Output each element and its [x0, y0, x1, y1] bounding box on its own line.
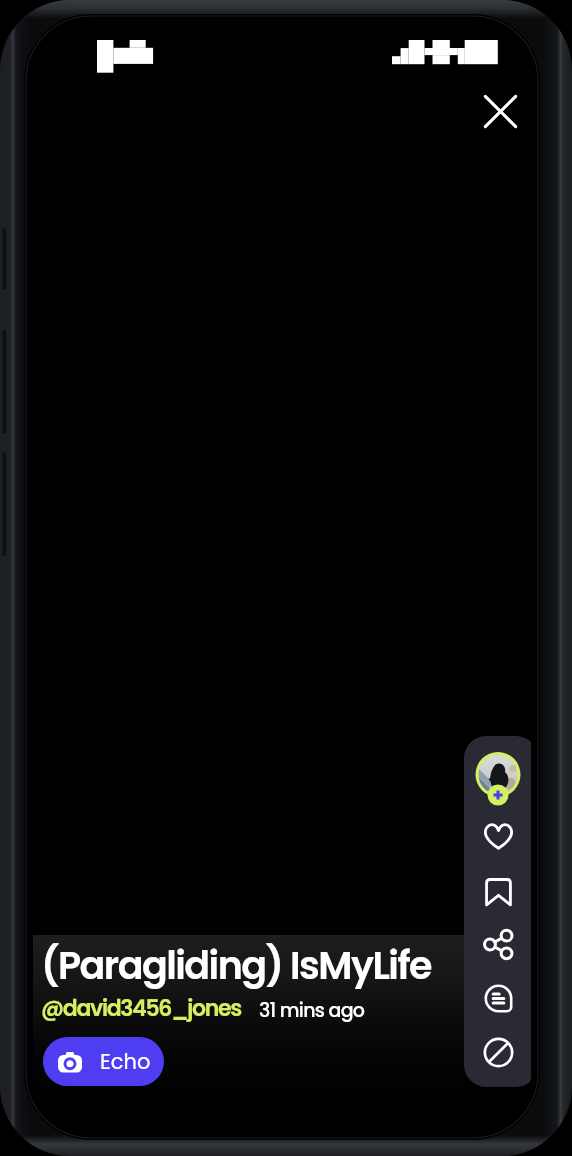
button[interactable]: Save [471, 863, 525, 917]
staticText: @david3456_jones [41, 993, 241, 1024]
button[interactable]: Like [471, 809, 525, 863]
button[interactable]: Share [471, 917, 525, 971]
staticText: (Paragliding) IsMyLife [41, 939, 431, 992]
staticText: Echo [100, 1047, 151, 1076]
button[interactable]: Comments [471, 971, 525, 1025]
button[interactable]: Echo [43, 1037, 164, 1086]
button[interactable]: Follow david3456_jones [472, 752, 524, 809]
button[interactable]: Not interested [471, 1025, 525, 1079]
button[interactable]: Close [472, 83, 529, 140]
staticText: 31 mins ago [259, 997, 365, 1024]
